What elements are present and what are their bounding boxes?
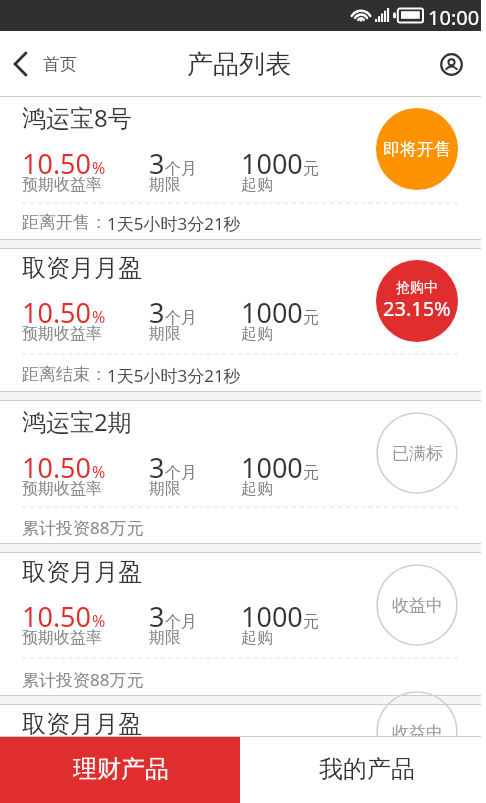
staticText: 个月 — [165, 463, 197, 483]
staticText: 个月 — [165, 308, 197, 328]
staticText: 3 — [149, 598, 165, 635]
button[interactable]: 理财产品 — [0, 737, 240, 803]
staticText: 10:00 — [428, 4, 480, 31]
staticText: 起购 — [241, 324, 273, 344]
staticText: 收益中 — [392, 595, 443, 616]
staticText: 1天5小时3分21秒 — [107, 212, 241, 235]
staticText: 鸿运宝2期 — [22, 405, 132, 438]
staticText: 元 — [303, 308, 319, 328]
staticText: 元 — [303, 463, 319, 483]
staticText: % — [92, 157, 106, 179]
staticText: 预期收益率 — [22, 175, 102, 195]
staticText: 起购 — [241, 479, 273, 499]
staticText: 已满标 — [392, 443, 443, 464]
staticText: % — [92, 461, 106, 483]
staticText: 预期收益率 — [22, 479, 102, 499]
staticText: 首页 — [43, 54, 77, 75]
staticText: 期限 — [149, 324, 181, 344]
staticText: 3 — [149, 449, 165, 486]
button[interactable]: Account — [422, 41, 481, 88]
staticText: 3 — [149, 145, 165, 182]
button[interactable]: 鸿运宝8号 — [0, 97, 481, 239]
staticText: 个月 — [165, 612, 197, 632]
button[interactable]: 取资月月盈 — [0, 553, 481, 695]
staticText: 鸿运宝8号 — [22, 101, 132, 134]
staticText: 23.15% — [383, 295, 451, 322]
staticText: 期限 — [149, 628, 181, 648]
staticText: 10.50 — [22, 145, 92, 182]
staticText: 取资月月盈 — [22, 557, 142, 587]
staticText: % — [92, 306, 106, 328]
staticText: 收益中 — [392, 722, 443, 743]
staticText: 1000 — [241, 449, 303, 486]
staticText: 预期收益率 — [22, 628, 102, 648]
staticText: 累计投资88万元 — [22, 516, 144, 539]
staticText: 距离开售： — [22, 212, 107, 233]
staticText: 期限 — [149, 479, 181, 499]
staticText: 理财产品 — [73, 754, 169, 784]
staticText: 元 — [303, 612, 319, 632]
staticText: 我的产品 — [319, 754, 415, 784]
button[interactable]: 取资月月盈 — [0, 249, 481, 391]
staticText: 1000 — [241, 145, 303, 182]
button[interactable]: 取资月月盈 — [0, 705, 481, 736]
button[interactable]: 鸿运宝2期 — [0, 401, 481, 543]
staticText: 1天5小时3分21秒 — [107, 364, 241, 387]
staticText: 即将开售 — [383, 139, 451, 160]
staticText: 10.50 — [22, 449, 92, 486]
staticText: 距离结束： — [22, 364, 107, 385]
staticText: 累计投资88万元 — [22, 668, 144, 691]
staticText: 1000 — [241, 598, 303, 635]
staticText: 个月 — [165, 159, 197, 179]
staticText: 起购 — [241, 175, 273, 195]
staticText: 1000 — [241, 294, 303, 331]
staticText: 3 — [149, 294, 165, 331]
button[interactable]: 我的产品 — [240, 737, 481, 803]
staticText: 元 — [303, 159, 319, 179]
staticText: 10.50 — [22, 598, 92, 635]
staticText: 10.50 — [22, 294, 92, 331]
staticText: 产品列表 — [187, 48, 291, 81]
staticText: 预期收益率 — [22, 324, 102, 344]
staticText: 取资月月盈 — [22, 253, 142, 283]
staticText: 取资月月盈 — [22, 709, 142, 736]
staticText: % — [92, 610, 106, 632]
button[interactable]: 首页 — [0, 45, 91, 83]
staticText: 抢购中 — [396, 279, 438, 297]
staticText: 起购 — [241, 628, 273, 648]
staticText: 期限 — [149, 175, 181, 195]
